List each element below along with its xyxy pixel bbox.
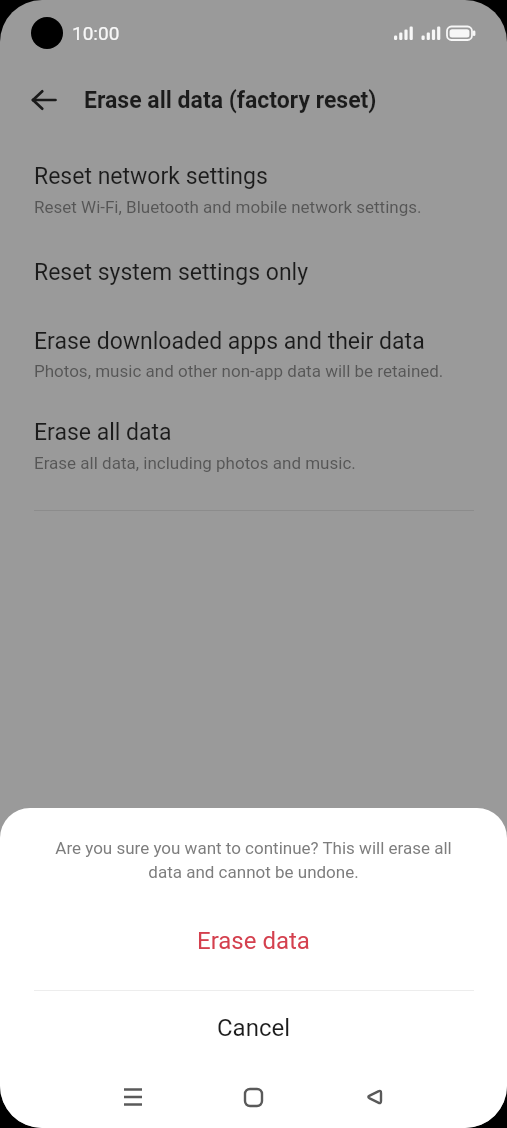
button[interactable] <box>350 1073 398 1121</box>
staticText: Erase all data (factory reset) <box>84 87 377 114</box>
button[interactable] <box>109 1073 157 1121</box>
button[interactable] <box>20 76 68 124</box>
staticText: Photos, music and other non-app data wil… <box>34 361 444 381</box>
staticText: Erase data <box>197 927 310 955</box>
staticText: Reset network settings <box>34 163 268 190</box>
staticText: Reset Wi-Fi, Bluetooth and mobile networ… <box>34 197 422 217</box>
staticText: Erase downloaded apps and their data <box>34 328 425 355</box>
button[interactable] <box>0 916 507 966</box>
button[interactable] <box>0 148 507 232</box>
button[interactable] <box>0 404 507 488</box>
staticText: 10:00 <box>72 22 120 44</box>
staticText: Reset system settings only <box>34 259 309 286</box>
button[interactable] <box>229 1073 277 1121</box>
button[interactable] <box>0 1003 507 1053</box>
staticText: Erase all data <box>34 419 172 446</box>
staticText: Cancel <box>217 1014 291 1042</box>
button[interactable] <box>0 240 507 304</box>
button[interactable] <box>0 312 507 396</box>
staticText: Are you sure you want to continue? This … <box>55 838 452 882</box>
staticText: Erase all data, including photos and mus… <box>34 453 356 473</box>
